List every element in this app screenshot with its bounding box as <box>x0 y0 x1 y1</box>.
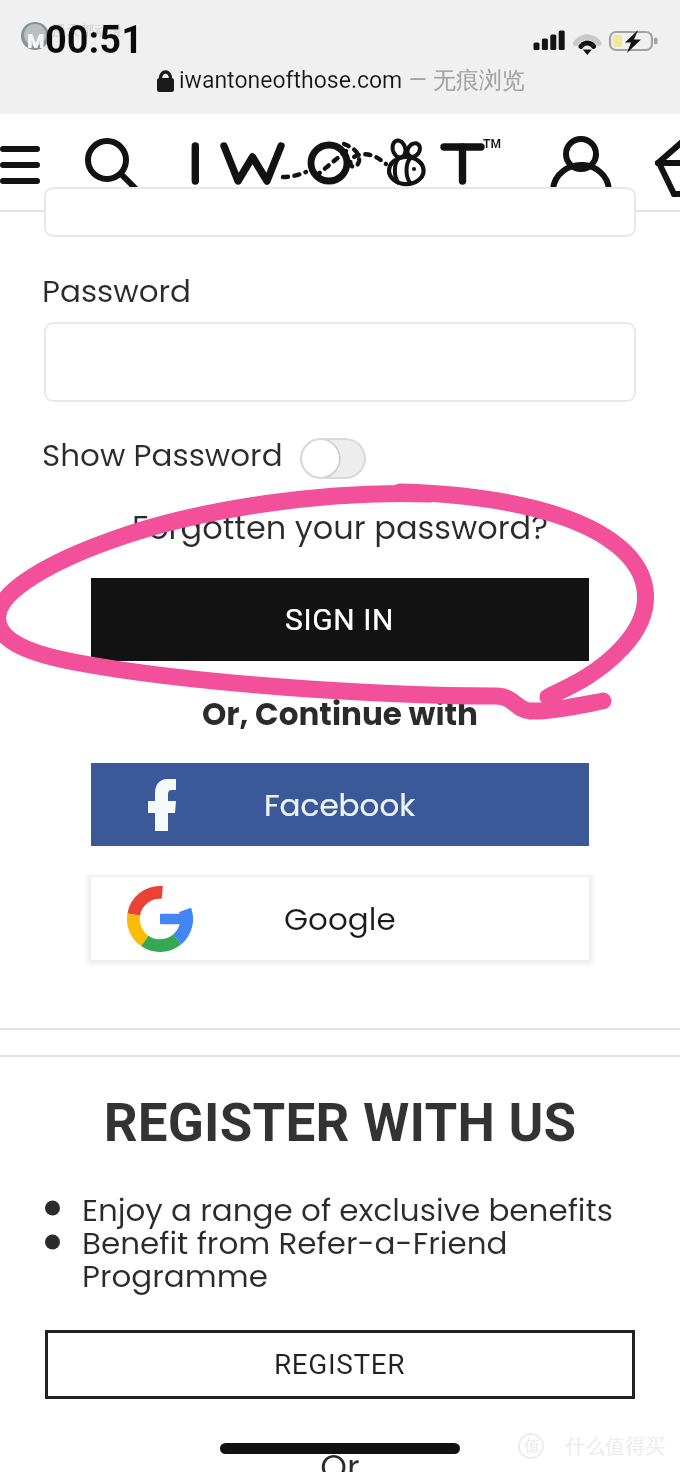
staticText: Benefit from Refer-a-Friend <box>82 1221 508 1264</box>
button[interactable]: Basket <box>650 132 680 194</box>
button[interactable]: Show Password <box>42 433 283 476</box>
staticText: TM <box>483 137 501 151</box>
button[interactable]: Facebook <box>91 763 589 846</box>
button[interactable]: Google <box>91 877 589 960</box>
staticText: Programme <box>82 1254 268 1297</box>
staticText: 什么值得买 <box>560 1432 666 1460</box>
staticText: 00:51 <box>45 18 143 63</box>
button[interactable]: IWOOT home <box>180 128 500 208</box>
staticText: Password <box>42 269 192 312</box>
staticText: 值 <box>524 1436 540 1456</box>
button[interactable]: REGISTER <box>45 1330 635 1399</box>
staticText: — <box>403 67 433 94</box>
staticText: Facebook <box>264 783 416 826</box>
button[interactable]: Show password toggle <box>300 438 366 479</box>
staticText: REGISTER <box>274 1348 406 1381</box>
staticText: iwantoneofthose.com <box>179 67 403 94</box>
button[interactable]: Account <box>548 132 614 194</box>
button[interactable]: Search <box>80 132 146 194</box>
button[interactable]: Menu <box>0 132 52 194</box>
staticText: Google <box>284 897 396 940</box>
staticText: REGISTER WITH US <box>0 1092 680 1154</box>
staticText: Or, Continue with <box>0 692 680 735</box>
staticText: Show Password <box>42 433 283 476</box>
button[interactable] <box>44 322 636 402</box>
staticText: Forgotten your password? <box>0 505 680 550</box>
staticText: Or <box>0 1443 680 1472</box>
staticText: SIGN IN <box>285 602 395 637</box>
button[interactable]: SIGN IN <box>91 578 589 661</box>
staticText: 无痕浏览 <box>433 66 525 95</box>
staticText: Enjoy a range of exclusive benefits <box>82 1188 613 1231</box>
staticText: 漫天都动漫 <box>52 22 122 40</box>
staticText: M <box>27 28 45 55</box>
